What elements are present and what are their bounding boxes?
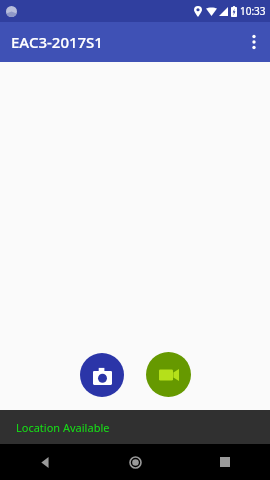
staticText: 10:33: [240, 4, 266, 18]
button[interactable]: Home: [90, 444, 180, 480]
button[interactable]: More options: [238, 22, 270, 62]
staticText: Location Available: [16, 420, 110, 435]
staticText: EAC3-2017S1: [11, 32, 103, 52]
button[interactable]: Record video: [146, 352, 191, 397]
button[interactable]: Recent apps: [180, 444, 270, 480]
button[interactable]: Back: [0, 444, 90, 480]
button[interactable]: Take photo: [80, 353, 124, 397]
